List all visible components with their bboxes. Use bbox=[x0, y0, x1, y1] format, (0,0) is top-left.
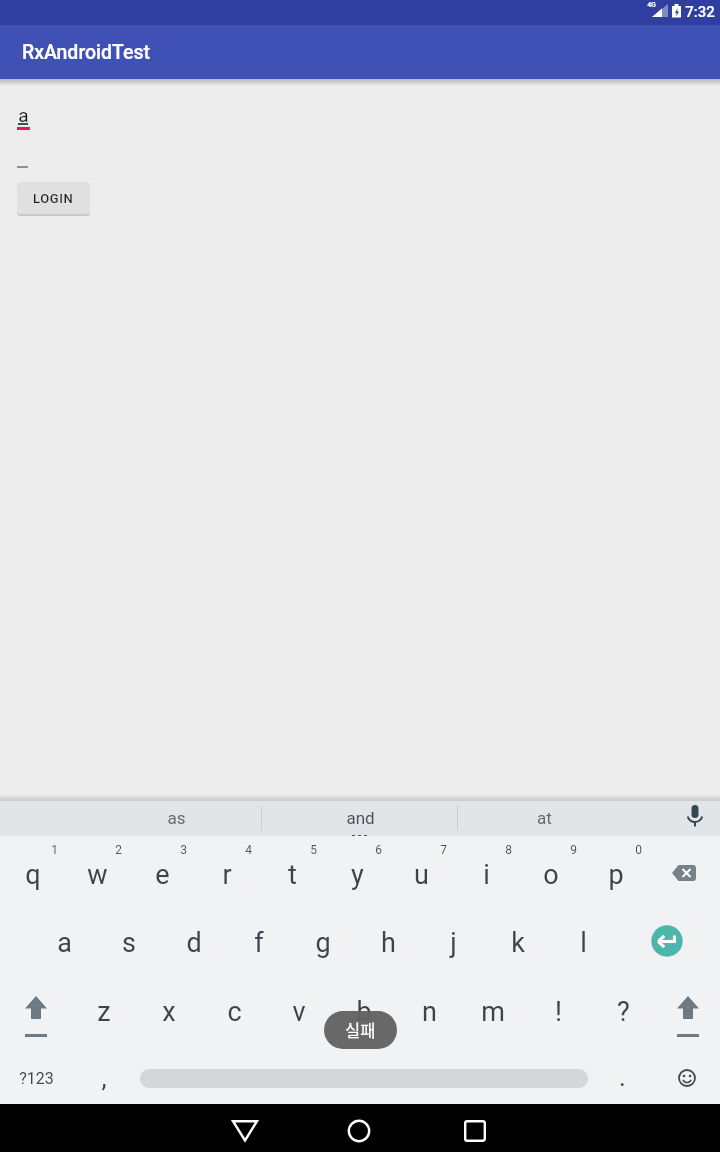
staticText: r bbox=[222, 859, 232, 891]
staticText: u bbox=[414, 859, 429, 891]
staticText: t bbox=[288, 859, 297, 891]
staticText: 8 bbox=[505, 843, 512, 857]
staticText: x bbox=[162, 996, 176, 1028]
staticText: h bbox=[381, 927, 396, 959]
staticText: d bbox=[186, 927, 202, 959]
staticText: a bbox=[18, 104, 29, 126]
staticText: 9 bbox=[570, 843, 577, 857]
staticText: n bbox=[422, 996, 437, 1028]
staticText: ! bbox=[555, 996, 562, 1028]
staticText: w bbox=[87, 859, 108, 891]
staticText: 4 bbox=[245, 843, 252, 857]
staticText: ?123 bbox=[19, 1069, 54, 1088]
staticText: 7:32 bbox=[685, 3, 715, 21]
staticText: z bbox=[97, 996, 111, 1028]
staticText: 1 bbox=[51, 843, 58, 857]
staticText: y bbox=[351, 859, 364, 891]
staticText: 0 bbox=[635, 843, 642, 857]
staticText: 6 bbox=[375, 843, 382, 857]
staticText: 2 bbox=[115, 843, 122, 857]
staticText: o bbox=[543, 859, 559, 891]
staticText: ? bbox=[617, 996, 630, 1028]
staticText: s bbox=[122, 927, 136, 959]
staticText: f bbox=[254, 927, 264, 959]
staticText: b bbox=[356, 996, 372, 1028]
staticText: i bbox=[483, 859, 490, 891]
staticText: LOGIN bbox=[33, 191, 74, 206]
staticText: . bbox=[619, 1062, 626, 1092]
staticText: 7 bbox=[440, 843, 447, 857]
staticText: RxAndroidTest bbox=[22, 41, 151, 64]
staticText: v bbox=[292, 996, 306, 1028]
staticText: m bbox=[481, 996, 505, 1028]
staticText: 3 bbox=[180, 843, 187, 857]
staticText: k bbox=[511, 927, 525, 959]
staticText: 실패 bbox=[345, 1018, 376, 1042]
staticText: j bbox=[450, 927, 457, 959]
staticText: 4G bbox=[647, 1, 656, 9]
staticText: g bbox=[315, 927, 331, 959]
staticText: at bbox=[537, 808, 552, 828]
staticText: c bbox=[227, 996, 242, 1028]
staticText: e bbox=[155, 859, 170, 891]
staticText: as bbox=[167, 808, 186, 828]
staticText: a bbox=[57, 927, 72, 959]
staticText: , bbox=[101, 1063, 107, 1093]
staticText: and bbox=[346, 808, 375, 828]
staticText: p bbox=[608, 859, 624, 891]
staticText: l bbox=[580, 927, 587, 959]
staticText: 5 bbox=[310, 843, 317, 857]
staticText: q bbox=[25, 859, 41, 891]
